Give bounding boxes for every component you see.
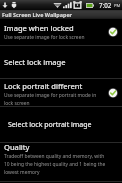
button[interactable]: Select lock portrait image <box>0 107 122 142</box>
staticText: Use separate image for lock screen <box>4 34 85 41</box>
button[interactable]: Quality <box>0 143 122 181</box>
other: Checkbox, checked <box>108 27 118 37</box>
staticText: Select lock image <box>4 57 66 67</box>
staticText: Full Screen Live Wallpaper <box>2 11 73 18</box>
staticText: Select lock portrait image <box>8 120 92 130</box>
button[interactable]: Lock portrait different <box>0 79 122 106</box>
button[interactable]: Select lock image <box>0 46 122 78</box>
staticText: Lock portrait different <box>4 81 83 91</box>
staticText: Image when locked <box>4 23 74 33</box>
button[interactable]: Image when locked <box>0 19 122 45</box>
staticText: PM <box>114 3 121 9</box>
staticText: 7:02 <box>99 1 112 9</box>
staticText: Use separate image for portrait mode in … <box>4 92 106 106</box>
staticText: Tradeoff between quality and memory, wit… <box>4 153 110 175</box>
other: Checkbox, checked <box>108 88 118 98</box>
staticText: Quality <box>4 142 30 152</box>
